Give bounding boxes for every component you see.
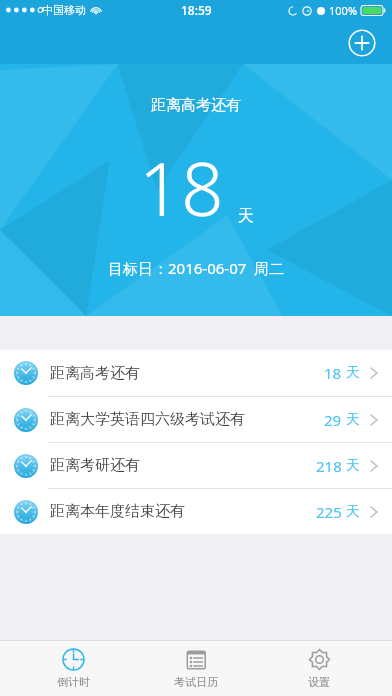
button[interactable]: 设置 [269,641,369,696]
staticText: 距离高考还有 [151,96,241,115]
button[interactable]: Add countdown [348,29,376,57]
staticText: 距离本年度结束还有 [50,502,185,521]
staticText: 225 [316,502,342,522]
staticText: 天 [346,503,360,521]
button[interactable]: 倒计时 [23,641,123,696]
staticText: 18:59 [181,2,212,18]
staticText: 倒计时 [57,675,90,689]
staticText: 100% [329,3,358,18]
staticText: 距离考研还有 [50,456,140,475]
button[interactable]: 距离大学英语四六级考试还有 [0,396,392,442]
button[interactable]: 距离本年度结束还有 [0,488,392,534]
staticText: 218 [316,456,342,476]
staticText: 29 [324,410,342,430]
staticText: 18 [324,363,342,383]
button[interactable]: 考试日历 [146,641,246,696]
button[interactable]: 距离考研还有 [0,442,392,488]
staticText: 天 [238,206,254,226]
button[interactable]: 距离高考还有 [0,350,392,396]
staticText: 天 [346,411,360,429]
staticText: 18 [139,137,224,238]
staticText: 距离大学英语四六级考试还有 [50,410,245,429]
staticText: 考试日历 [174,675,218,689]
staticText: 天 [346,364,360,382]
staticText: 设置 [308,675,330,689]
staticText: 距离高考还有 [50,364,140,383]
staticText: 目标日：2016-06-07 周二 [108,258,285,278]
staticText: 天 [346,457,360,475]
staticText: 中国移动 [42,3,86,17]
